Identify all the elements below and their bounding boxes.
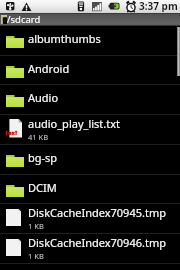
staticText: Audio [28, 90, 59, 105]
staticText: 41 KB [28, 132, 49, 142]
button[interactable]: DCIM [0, 175, 180, 205]
staticText: Android [28, 61, 70, 76]
button[interactable]: Audio [0, 85, 180, 115]
button[interactable]: DiskCacheIndex70945.tmp [0, 204, 180, 234]
staticText: 1 KB [28, 221, 44, 231]
staticText: bg-sp [28, 150, 58, 165]
button[interactable]: albumthumbs [0, 26, 180, 56]
staticText: albumthumbs [28, 31, 101, 46]
staticText: 3:37 pm [139, 0, 178, 12]
staticText: DCIM [28, 180, 57, 195]
button[interactable]: bg-sp [0, 145, 180, 175]
staticText: audio_play_list.txt [28, 116, 121, 131]
button[interactable]: audio_play_list.txt [0, 115, 180, 145]
button[interactable]: Android [0, 56, 180, 86]
staticText: DiskCacheIndex70945.tmp [28, 205, 166, 220]
staticText: /sdcard [7, 13, 41, 26]
staticText: DiskCacheIndex70946.tmp [28, 235, 166, 250]
staticText: 1 KB [28, 251, 44, 261]
button[interactable]: DiskCacheIndex70946.tmp [0, 234, 180, 264]
